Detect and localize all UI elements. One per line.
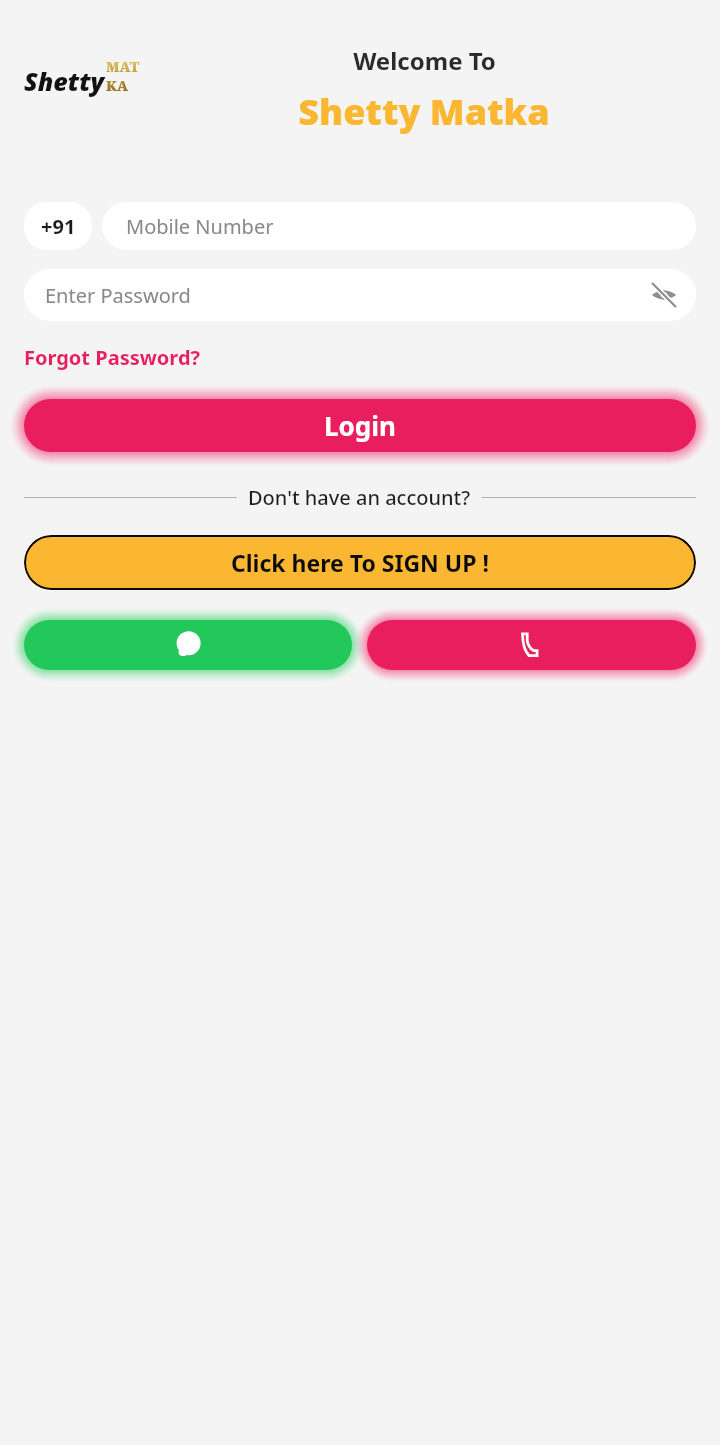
button[interactable]: Login (24, 399, 696, 452)
staticText: Login (324, 408, 396, 443)
staticText: Enter Password (45, 282, 191, 309)
button[interactable]: Forgot Password? (24, 342, 201, 373)
staticText: Shetty (24, 64, 105, 98)
button[interactable]: Show password (646, 277, 682, 313)
staticText: Don't have an account? (248, 484, 471, 511)
button[interactable]: +91 (24, 202, 92, 250)
staticText: +91 (41, 213, 76, 240)
staticText: Click here To SIGN UP ! (231, 547, 489, 578)
staticText: MATKA (106, 57, 144, 95)
staticText: Forgot Password? (24, 344, 201, 371)
staticText: Shetty Matka (298, 87, 550, 136)
button[interactable]: Mobile Number (102, 202, 696, 250)
staticText: Welcome To (353, 44, 496, 77)
button[interactable]: Call support (367, 620, 696, 670)
staticText: Mobile Number (126, 213, 274, 240)
button[interactable]: Click here To SIGN UP ! (24, 535, 696, 590)
button[interactable]: Enter Password (24, 269, 696, 321)
button[interactable]: Chat on WhatsApp (24, 620, 352, 670)
